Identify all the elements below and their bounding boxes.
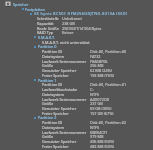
staticText: Größe (42, 101, 54, 106)
staticText: NTFS (90, 92, 100, 97)
staticText: SK hynix BC501 HFM256GDJTNG-8310A (SSD) (34, 11, 128, 16)
staticText: FAT32 (90, 54, 101, 59)
staticText: Disk #0, Partition #2 (90, 120, 127, 125)
staticText: 256 MB (90, 63, 104, 68)
button[interactable]: Freier Speicher (42, 111, 69, 116)
button[interactable]: 256 MB (90, 63, 104, 68)
staticText: Laufwerk Seriennummer (42, 130, 87, 135)
staticText: S.M.A.R.T. (38, 35, 56, 40)
button[interactable]: Festplatten (25, 7, 45, 12)
button[interactable]: Genutzter Speicher (42, 68, 77, 73)
staticText: Partition 2 (38, 115, 57, 120)
staticText: Keiner (62, 30, 74, 35)
staticText: S.M.A.R.T. nicht unterstützt (42, 40, 90, 45)
staticText: NTFS (90, 125, 100, 130)
button[interactable]: Unbekannt (62, 16, 82, 21)
button[interactable]: Reale Größe (37, 26, 59, 31)
button[interactable]: Größe (42, 101, 54, 106)
button[interactable]: 68B94CF1 (90, 130, 108, 135)
staticText: Genutzter Speicher (42, 106, 77, 111)
button[interactable]: Freier Speicher (42, 73, 69, 78)
button[interactable]: Genutzter Speicher (42, 106, 77, 111)
button[interactable]: Dateisystem (42, 54, 65, 59)
staticText: Größe (42, 134, 54, 139)
button[interactable]: 69 GB (30%) (90, 106, 112, 111)
staticText: F8A5BF06 (90, 59, 108, 64)
button[interactable]: Laufwerk Seriennummer (42, 130, 87, 135)
button[interactable]: A4D072D8 (90, 97, 109, 102)
button[interactable]: Disk #0, Partition #0 (90, 49, 127, 54)
staticText: Partition 0 (38, 44, 57, 49)
button[interactable]: Partition 1 (38, 78, 57, 83)
staticText: 979 MB (90, 134, 104, 139)
button[interactable]: Laufwerk Seriennummer (42, 97, 87, 102)
button[interactable]: Größe (42, 63, 54, 68)
button[interactable]: 238 GB (62, 21, 75, 26)
button[interactable]: 193 MB (76%) (90, 73, 115, 78)
staticText: Partition ID (42, 82, 63, 87)
staticText: Laufwerkbuchstabe (42, 87, 78, 92)
staticText: 69 GB (30%) (90, 106, 112, 111)
staticText: Partition 1 (38, 78, 57, 83)
staticText: Unbekannt (62, 16, 82, 21)
button[interactable]: 979 MB (90, 134, 104, 139)
button[interactable]: SK hynix BC501 HFM256GDJTNG-8310A (SSD) (34, 11, 128, 16)
staticText: Schnittstelle (37, 16, 59, 21)
staticText: 62 MB (24%) (90, 68, 113, 73)
button[interactable]: Partition 2 (38, 115, 57, 120)
staticText: Partition ID (42, 120, 63, 125)
staticText: Speicher (13, 2, 29, 7)
button[interactable]: Größe (42, 134, 54, 139)
staticText: Disk #0, Partition #0 (90, 49, 127, 54)
button[interactable]: Speicher (13, 2, 29, 7)
button[interactable]: 483 MB (50%) (90, 144, 115, 149)
button[interactable]: RAID Typ (37, 30, 54, 35)
staticText: Dateisystem (42, 92, 65, 97)
button[interactable]: Freier Speicher (42, 144, 69, 149)
button[interactable]: Partition ID (42, 82, 63, 87)
staticText: Genutzter Speicher (42, 139, 77, 144)
staticText: 483 MB (50%) (90, 144, 115, 149)
button[interactable]: Genutzter Speicher (42, 139, 77, 144)
button[interactable]: Partition ID (42, 120, 63, 125)
staticText: Größe (42, 63, 54, 68)
button[interactable]: Laufwerk Seriennummer (42, 59, 87, 64)
staticText: Genutzter Speicher (42, 68, 77, 73)
staticText: 256'060'514'304 Bytes (62, 26, 102, 31)
staticText: 237 GB (90, 101, 103, 106)
button[interactable]: Laufwerkbuchstabe (42, 87, 78, 92)
button[interactable]: Kapazität (37, 21, 54, 26)
button[interactable]: 256'060'514'304 Bytes (62, 26, 102, 31)
button[interactable]: Schnittstelle (37, 16, 59, 21)
button[interactable]: F8A5BF06 (90, 59, 108, 64)
staticText: Dateisystem (42, 125, 65, 130)
button[interactable]: Disk #0, Partition #2 (90, 120, 127, 125)
button[interactable]: Speicher (5, 1, 11, 7)
button[interactable]: 157 GB (67%) (90, 111, 114, 116)
button[interactable]: NTFS (90, 92, 100, 97)
staticText: Freier Speicher (42, 111, 69, 116)
button[interactable]: Keiner (62, 30, 74, 35)
staticText: Dateisystem (42, 54, 65, 59)
button[interactable]: Dateisystem (42, 125, 65, 130)
staticText: 68B94CF1 (90, 130, 108, 135)
staticText: Partition ID (42, 49, 63, 54)
button[interactable]: C: (90, 87, 94, 92)
staticText: Laufwerk Seriennummer (42, 59, 87, 64)
button[interactable]: Partition ID (42, 49, 63, 54)
button[interactable]: 496 MB (50%) (90, 139, 115, 144)
button[interactable]: FAT32 (90, 54, 101, 59)
button[interactable]: S.M.A.R.T. nicht unterstützt (42, 40, 90, 45)
staticText: 157 GB (67%) (90, 111, 114, 116)
button[interactable]: Disk #0, Partition #1 (90, 82, 127, 87)
button[interactable]: S.M.A.R.T. (38, 35, 56, 40)
staticText: 238 GB (62, 21, 75, 26)
staticText: 193 MB (76%) (90, 73, 115, 78)
button[interactable]: 62 MB (24%) (90, 68, 113, 73)
button[interactable]: NTFS (90, 125, 100, 130)
button[interactable]: Partition 0 (38, 44, 57, 49)
button[interactable]: 237 GB (90, 101, 103, 106)
staticText: Freier Speicher (42, 73, 69, 78)
button[interactable]: Dateisystem (42, 92, 65, 97)
staticText: Laufwerk Seriennummer (42, 97, 87, 102)
